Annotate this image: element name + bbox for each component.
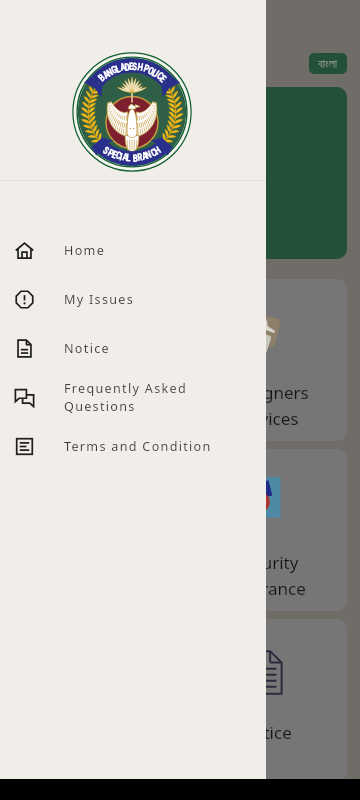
button[interactable]: Foreigners Services: [185, 279, 347, 441]
button[interactable]: Frequently Asked Questions: [0, 373, 266, 422]
button[interactable]: Security Clearance: [185, 449, 347, 611]
staticText: My Issues: [64, 291, 135, 308]
staticText: বাংলা: [318, 58, 338, 70]
button[interactable]: [13, 87, 347, 259]
staticText: Frequently Asked Questions: [64, 380, 187, 415]
staticText: Home: [64, 242, 106, 259]
staticText: Security Clearance: [227, 551, 306, 600]
button[interactable]: Notice: [0, 324, 266, 373]
staticText: Notice: [240, 721, 292, 744]
button[interactable]: About Us: [13, 619, 175, 781]
staticText: Visa Services: [62, 381, 127, 430]
button[interactable]: বাংলা: [309, 53, 347, 74]
button[interactable]: Home: [0, 226, 266, 275]
button[interactable]: Visa Services: [13, 279, 175, 441]
staticText: Foreigners Services: [223, 381, 309, 430]
staticText: Notice: [64, 340, 110, 357]
button[interactable]: Notice: [185, 619, 347, 781]
button[interactable]: My Issues: [0, 275, 266, 324]
button[interactable]: Terms and Condition: [0, 422, 266, 471]
button[interactable]: Police Verification: [13, 449, 175, 611]
staticText: Terms and Condition: [64, 438, 212, 455]
